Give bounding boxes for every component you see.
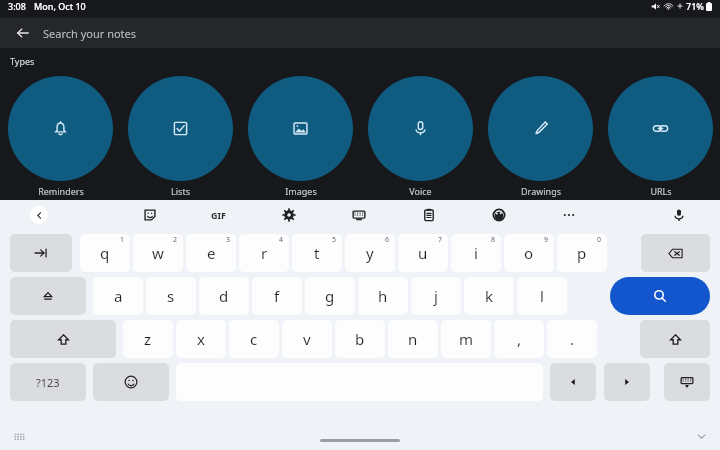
button[interactable]: f [252,277,302,315]
button[interactable]: v [282,320,332,358]
staticText: , [517,329,522,349]
staticText: l [540,286,544,306]
button[interactable]: Shift [10,320,116,358]
staticText: URLs [650,185,672,197]
staticText: 9 [544,235,549,245]
button[interactable]: Lists [120,76,240,197]
staticText: t [314,243,320,263]
button[interactable]: Collapse toolbar [30,206,48,224]
button[interactable]: u [398,234,448,272]
button[interactable]: Shift [640,320,710,358]
button[interactable]: g [305,277,355,315]
button[interactable]: i [451,234,501,272]
staticText: Mon, Oct 10 [34,0,86,12]
staticText: w [152,243,164,263]
staticText: u [418,243,428,263]
button[interactable]: Drawings [480,76,600,197]
button[interactable]: Back [0,18,720,48]
button[interactable]: e [186,234,236,272]
staticText: o [524,243,534,263]
staticText: h [378,286,388,306]
button[interactable]: DOTS [555,201,583,229]
staticText: 71% [686,0,704,12]
staticText: Reminders [38,185,84,197]
button[interactable]: Right [604,363,650,401]
button[interactable]: GEAR [275,201,303,229]
staticText: y [366,243,374,263]
button[interactable]: l [517,277,567,315]
staticText: f [274,286,280,306]
staticText: v [303,329,311,349]
staticText: k [485,286,494,306]
staticText: Search your notes [43,26,137,41]
staticText: a [114,286,123,306]
staticText: d [219,286,229,306]
staticText: 6 [385,235,390,245]
button[interactable]: KEYBOARD [345,201,373,229]
button[interactable]: j [411,277,461,315]
staticText: 8 [491,235,496,245]
button[interactable]: Search [610,277,710,315]
button[interactable]: c [229,320,279,358]
button[interactable]: Back [10,20,36,46]
button[interactable]: y [345,234,395,272]
staticText: 1 [120,235,125,245]
staticText: Drawings [521,185,561,197]
button[interactable]: z [123,320,173,358]
staticText: 3:08 [8,0,26,12]
button[interactable]: GIF [204,201,232,229]
button[interactable]: k [464,277,514,315]
staticText: Voice [409,185,432,197]
button[interactable]: n [388,320,438,358]
button[interactable]: o [504,234,554,272]
button[interactable]: Emoji [93,363,169,401]
staticText: z [144,329,152,349]
staticText: 4 [279,235,284,245]
button[interactable]: m [441,320,491,358]
button[interactable]: a [93,277,143,315]
button[interactable]: Backspace [641,234,710,272]
button[interactable]: Hide [690,425,712,447]
button[interactable]: w [133,234,183,272]
button[interactable]: x [176,320,226,358]
button[interactable]: Switch keyboard [8,425,30,447]
staticText: p [577,243,587,263]
staticText: Types [10,55,35,67]
button[interactable]: ?123 [10,363,86,401]
button[interactable]: STICKER [136,201,164,229]
button[interactable]: Caps lock [10,277,86,315]
button[interactable]: Hide keyboard [664,363,710,401]
button[interactable]: MIC [665,201,693,229]
button[interactable]: r [239,234,289,272]
staticText: GIF [211,209,226,221]
staticText: 2 [173,235,178,245]
staticText: b [355,329,365,349]
staticText: Lists [171,185,190,197]
button[interactable]: . [547,320,597,358]
staticText: x [197,329,205,349]
button[interactable]: URLs [600,76,720,197]
button[interactable]: b [335,320,385,358]
button[interactable]: q [80,234,130,272]
button[interactable]: h [358,277,408,315]
button[interactable]: Reminders [0,76,120,197]
button[interactable]: s [146,277,196,315]
button[interactable]: , [494,320,544,358]
button[interactable]: t [292,234,342,272]
button[interactable]: Voice [360,76,480,197]
button[interactable]: Tab [10,234,72,272]
button[interactable]: PALETTE [485,201,513,229]
staticText: ?123 [36,375,60,390]
staticText: 0 [597,235,602,245]
staticText: m [459,329,474,349]
button[interactable]: Left [550,363,596,401]
staticText: r [261,243,268,263]
button[interactable]: d [199,277,249,315]
button[interactable]: Images [240,76,360,197]
button[interactable]: p [557,234,607,272]
staticText: Images [285,185,317,197]
button[interactable]: CLIPBOARD [415,201,443,229]
staticText: g [325,286,335,306]
staticText: i [474,243,478,263]
